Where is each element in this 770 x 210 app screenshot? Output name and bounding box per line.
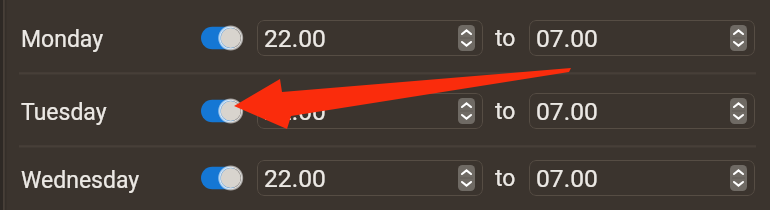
- button[interactable]: Adjust time: [730, 165, 747, 191]
- staticText: 07.00: [536, 97, 598, 126]
- button[interactable]: 07.00: [529, 93, 755, 129]
- button[interactable]: Adjust time: [458, 165, 475, 191]
- button[interactable]: Monday: [0, 2, 770, 75]
- button[interactable]: Adjust time: [730, 98, 747, 124]
- button[interactable]: 07.00: [529, 20, 755, 56]
- staticText: 22.00: [264, 97, 326, 126]
- button[interactable]: 22.00: [257, 160, 483, 196]
- button[interactable]: Schedule enabled: [201, 22, 251, 54]
- button[interactable]: Schedule enabled: [201, 162, 251, 194]
- staticText: to: [495, 98, 516, 125]
- staticText: Wednesday: [21, 167, 140, 194]
- button[interactable]: Adjust time: [458, 25, 475, 51]
- staticText: to: [495, 165, 516, 192]
- staticText: 22.00: [264, 164, 326, 193]
- staticText: to: [495, 25, 516, 52]
- staticText: Tuesday: [21, 99, 107, 126]
- button[interactable]: 22.00: [257, 20, 483, 56]
- staticText: Monday: [21, 26, 104, 53]
- staticText: 07.00: [536, 24, 598, 53]
- button[interactable]: 07.00: [529, 160, 755, 196]
- staticText: 22.00: [264, 24, 326, 53]
- staticText: 07.00: [536, 164, 598, 193]
- button[interactable]: Adjust time: [730, 25, 747, 51]
- button[interactable]: Adjust time: [458, 98, 475, 124]
- button[interactable]: Schedule enabled: [201, 95, 251, 127]
- button[interactable]: Wednesday: [0, 148, 770, 210]
- button[interactable]: Tuesday: [0, 75, 770, 148]
- button[interactable]: 22.00: [257, 93, 483, 129]
